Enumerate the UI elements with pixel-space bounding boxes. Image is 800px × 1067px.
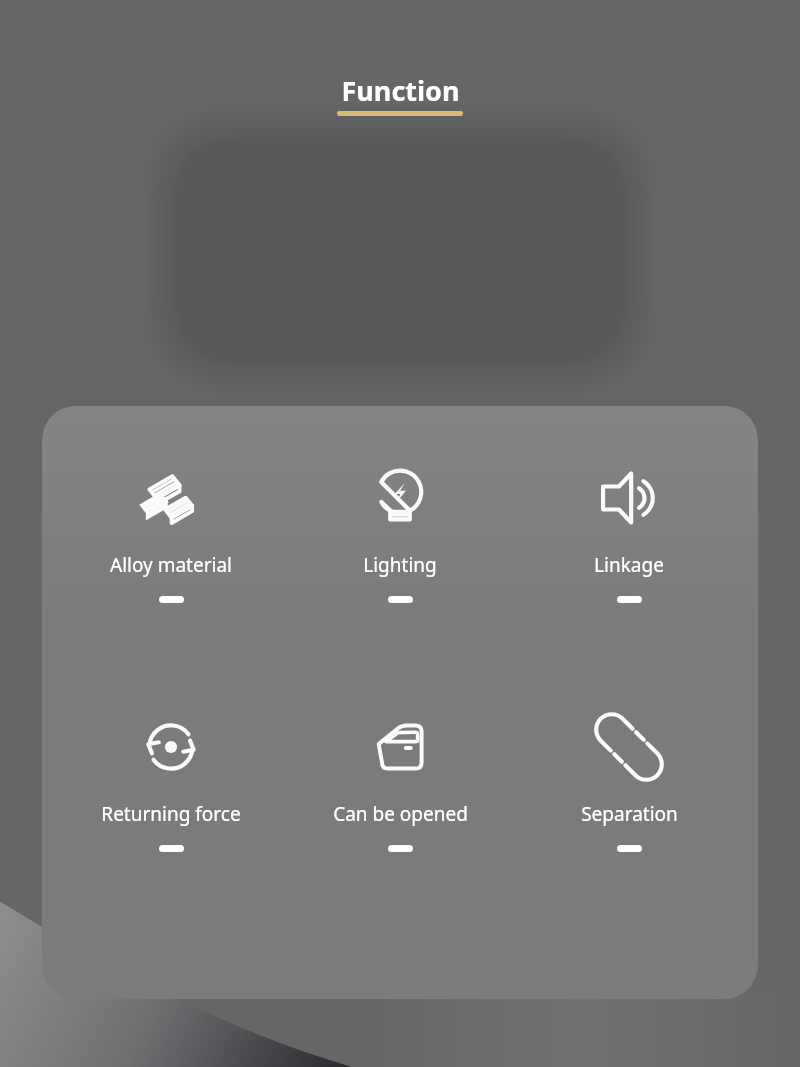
button[interactable]: Lighting xyxy=(300,458,500,607)
staticText: Returning force xyxy=(101,801,241,827)
staticText: Separation xyxy=(581,801,678,827)
button[interactable]: Alloy material xyxy=(71,458,271,607)
button[interactable]: Can be opened xyxy=(300,707,500,856)
button[interactable]: Separation xyxy=(529,707,729,856)
other: Returning force xyxy=(135,711,207,783)
staticText: Function xyxy=(341,72,460,109)
button[interactable]: Linkage xyxy=(529,458,729,607)
staticText: Alloy material xyxy=(110,552,232,578)
button[interactable]: Returning force xyxy=(71,707,271,856)
staticText: Linkage xyxy=(594,552,664,578)
staticText: Lighting xyxy=(363,552,437,578)
other: Separation xyxy=(593,711,665,783)
staticText: Can be opened xyxy=(333,801,468,827)
other: Lighting xyxy=(364,462,436,534)
other: Linkage xyxy=(593,462,665,534)
other: Alloy material xyxy=(135,462,207,534)
other: Can be opened xyxy=(364,711,436,783)
